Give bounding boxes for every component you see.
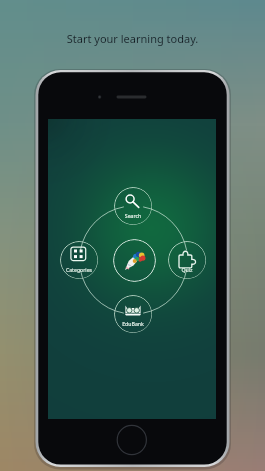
staticText: Quiz	[168, 266, 206, 279]
button[interactable]: Search	[114, 187, 152, 225]
staticText: EduBank	[114, 320, 152, 333]
button[interactable]: Home	[113, 239, 156, 282]
button[interactable]: Quiz	[168, 241, 206, 279]
staticText: Categories	[60, 266, 98, 279]
staticText: Start your learning today.	[0, 31, 265, 471]
staticText: Search	[114, 212, 152, 225]
button[interactable]: EduBank	[114, 295, 152, 333]
button[interactable]: Categories	[60, 241, 98, 279]
